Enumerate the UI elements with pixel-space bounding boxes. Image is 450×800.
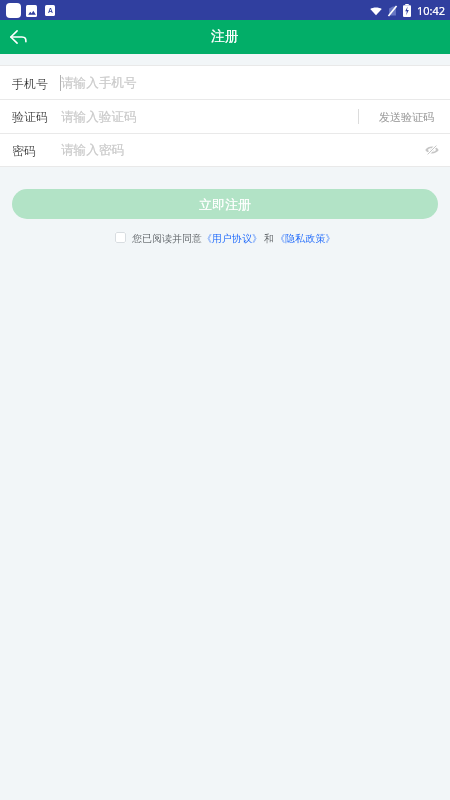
staticText: 请输入验证码 xyxy=(61,109,137,125)
button[interactable]: 发送验证码 xyxy=(359,100,450,133)
button[interactable]: Show password xyxy=(413,134,450,166)
staticText: 密码 xyxy=(12,143,36,158)
button[interactable]: Back xyxy=(0,20,36,54)
staticText: 请输入手机号 xyxy=(61,75,137,91)
staticText: 10:42 xyxy=(417,3,446,18)
button[interactable]: 您已阅读并同意《用户协议》 和 《隐私政策》 xyxy=(132,231,336,245)
button[interactable]: 密码 xyxy=(0,134,450,166)
staticText: 注册 xyxy=(211,28,239,46)
staticText: 手机号 xyxy=(12,76,48,91)
staticText: A xyxy=(48,6,53,16)
staticText: 请输入密码 xyxy=(61,142,124,158)
staticText: 立即注册 xyxy=(199,196,251,212)
button[interactable]: 立即注册 xyxy=(12,189,438,219)
button[interactable]: Agree to terms checkbox xyxy=(115,232,126,243)
staticText: 验证码 xyxy=(12,109,48,124)
button[interactable]: 验证码 xyxy=(0,100,450,133)
staticText: 发送验证码 xyxy=(379,110,434,124)
button[interactable]: 手机号 xyxy=(0,66,450,99)
